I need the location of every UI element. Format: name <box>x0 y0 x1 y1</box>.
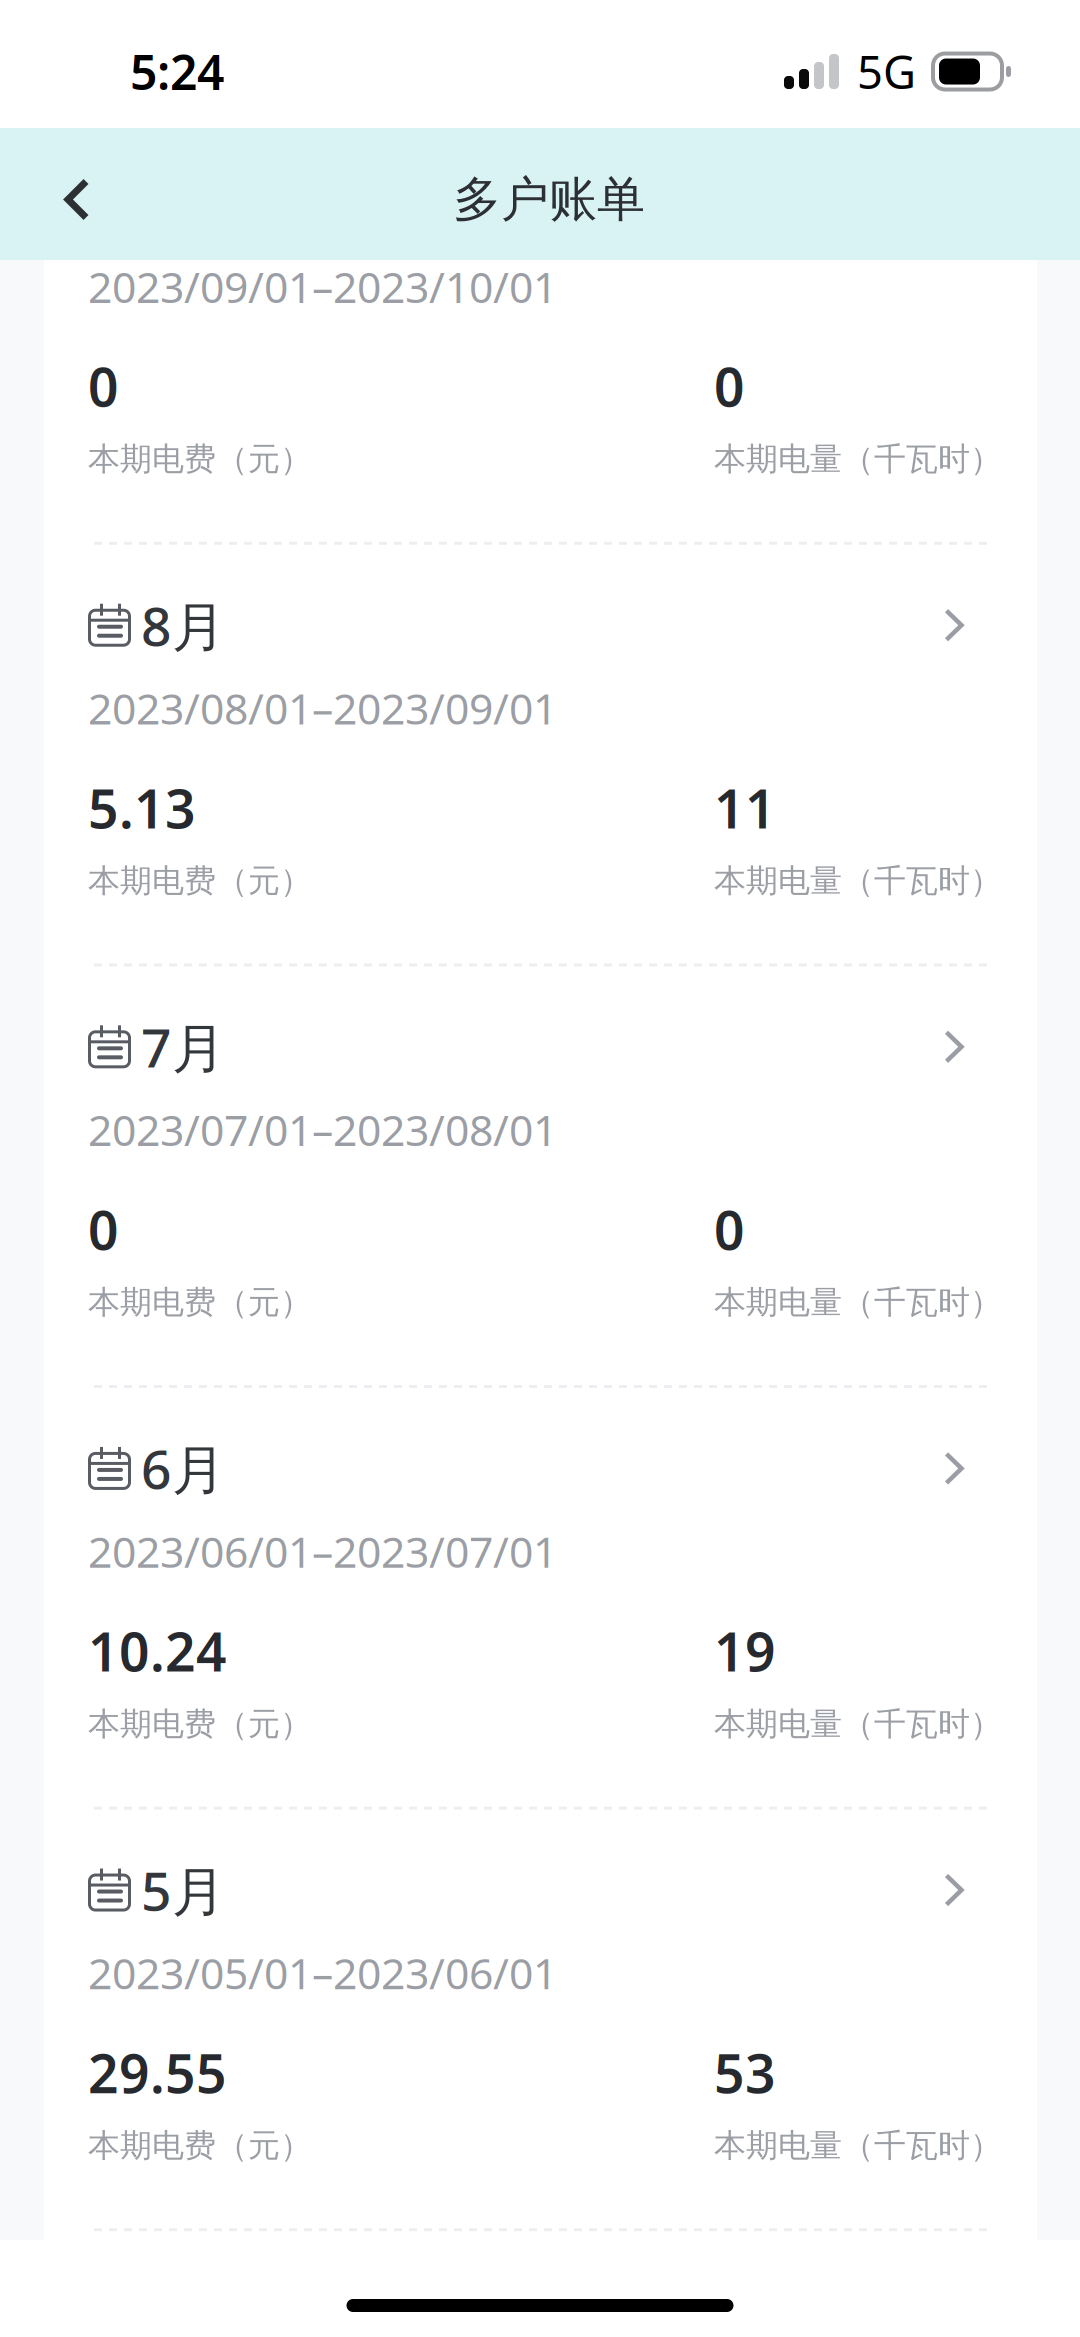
staticText: 8月 <box>141 590 225 661</box>
staticText: 0 <box>88 1194 119 1265</box>
staticText: 本期电费（元） <box>88 439 312 479</box>
button[interactable]: 8月 <box>44 545 1037 963</box>
staticText: 本期电费（元） <box>88 1704 312 1744</box>
staticText: 本期电费（元） <box>88 2126 312 2165</box>
staticText: 本期电量（千瓦时） <box>714 2126 1002 2165</box>
staticText: 6月 <box>141 1433 225 1504</box>
staticText: 多户账单 <box>453 170 645 229</box>
staticText: 2023/07/01–2023/08/01 <box>88 1101 557 1158</box>
staticText: 本期电量（千瓦时） <box>714 439 1002 479</box>
staticText: 5月 <box>141 1855 225 1925</box>
staticText: 7月 <box>141 1011 225 1082</box>
staticText: 本期电量（千瓦时） <box>714 1283 1002 1322</box>
staticText: 5G <box>857 41 916 102</box>
button[interactable]: 7月 <box>44 966 1037 1385</box>
staticText: 10.24 <box>88 1615 227 1686</box>
staticText: 0 <box>714 1194 745 1265</box>
staticText: 2023/08/01–2023/09/01 <box>88 680 557 736</box>
staticText: 11 <box>714 772 776 843</box>
staticText: 2023/09/01–2023/10/01 <box>88 258 557 315</box>
staticText: 53 <box>714 2037 776 2108</box>
staticText: 29.55 <box>88 2037 227 2108</box>
staticText: 19 <box>714 1615 776 1686</box>
staticText: 2023/06/01–2023/07/01 <box>88 1523 557 1579</box>
staticText: 0 <box>714 351 745 421</box>
button[interactable]: 5月 <box>44 1810 1037 2228</box>
button[interactable]: 6月 <box>44 1388 1037 1807</box>
staticText: 本期电费（元） <box>88 1283 312 1322</box>
staticText: 5.13 <box>88 772 196 843</box>
staticText: 本期电量（千瓦时） <box>714 1704 1002 1744</box>
staticText: 本期电费（元） <box>88 861 312 900</box>
staticText: 0 <box>88 351 119 421</box>
staticText: 2023/05/01–2023/06/01 <box>88 1944 557 2001</box>
staticText: 5:24 <box>130 40 224 103</box>
button[interactable]: Back <box>25 147 129 251</box>
staticText: 本期电量（千瓦时） <box>714 861 1002 900</box>
